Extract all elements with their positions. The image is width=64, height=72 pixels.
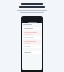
button[interactable]: Field two — [23, 36, 41, 39]
button[interactable]: Highlighted item two — [23, 40, 41, 44]
button[interactable]: Field one — [23, 27, 41, 30]
button[interactable]: Field three — [23, 45, 41, 48]
button[interactable]: App bar — [22, 21, 42, 23]
button[interactable]: Submit — [23, 51, 41, 54]
button[interactable]: Highlighted item — [23, 31, 41, 35]
